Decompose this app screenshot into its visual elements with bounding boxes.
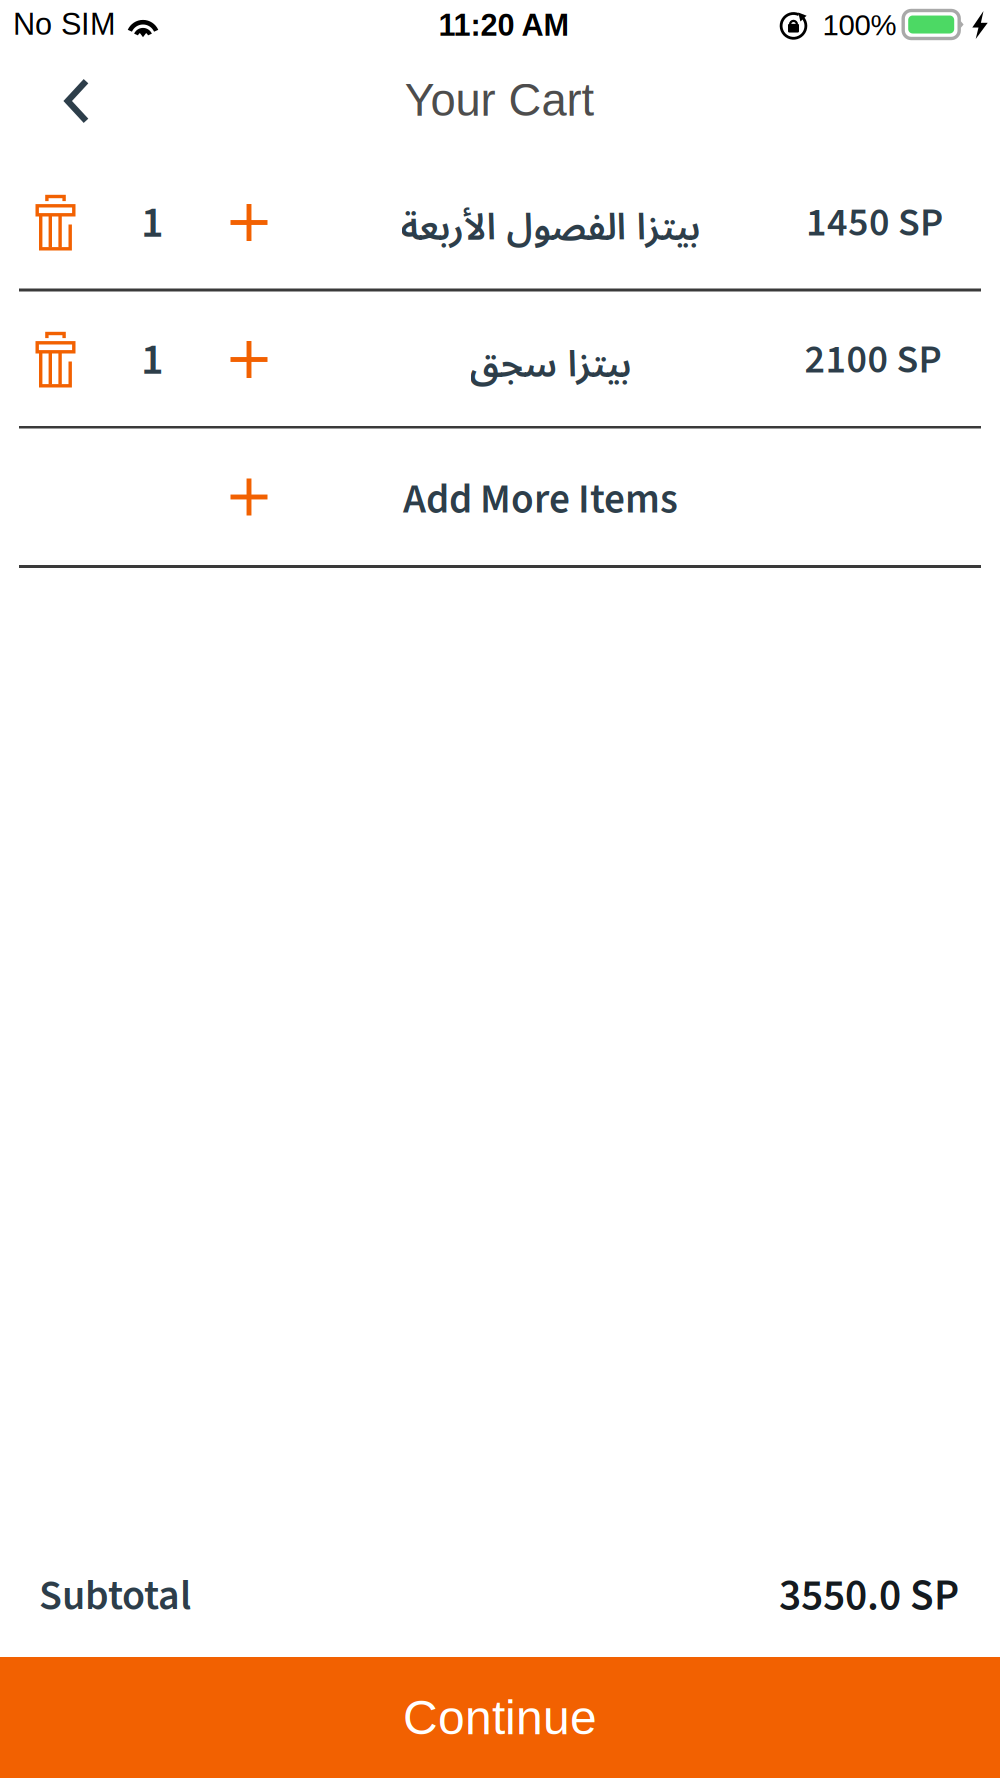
- staticText: No SIM: [13, 7, 116, 41]
- staticText: 2100 SP: [804, 331, 941, 388]
- staticText: Your Cart: [404, 75, 594, 125]
- button[interactable]: Back: [29, 57, 125, 145]
- staticText: 1: [141, 329, 164, 391]
- button[interactable]: Remove بيتزا الفصول الأربعة: [11, 172, 99, 272]
- staticText: 100%: [822, 9, 896, 41]
- button[interactable]: Add one بيتزا الفصول الأربعة: [208, 181, 290, 263]
- staticText: Continue: [403, 1691, 597, 1744]
- staticText: 1450 SP: [806, 194, 943, 251]
- button[interactable]: Add More Items: [0, 428, 1000, 565]
- staticText: Subtotal: [39, 1566, 191, 1626]
- staticText: 11:20 AM: [438, 8, 569, 42]
- staticText: Add More Items: [403, 470, 678, 529]
- staticText: بيتزا سجق: [469, 326, 631, 404]
- button[interactable]: Continue: [0, 1657, 1000, 1778]
- staticText: 3550.0 SP: [779, 1565, 959, 1627]
- staticText: 1: [141, 192, 164, 254]
- staticText: بيتزا الفصول الأربعة: [400, 189, 700, 267]
- button[interactable]: Remove بيتزا سجق: [11, 309, 99, 409]
- button[interactable]: Add one بيتزا سجق: [208, 318, 290, 400]
